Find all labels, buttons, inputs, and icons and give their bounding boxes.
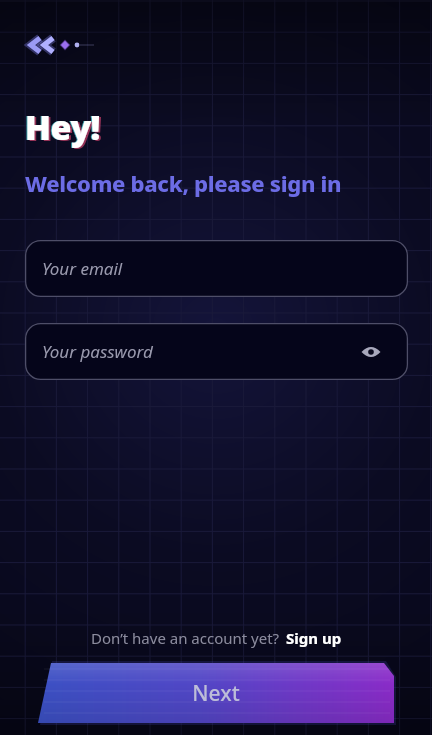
button[interactable]: Show password — [358, 339, 384, 365]
staticText: Welcome back, please sign in — [25, 168, 342, 198]
staticText: Hey! — [25, 104, 100, 150]
button[interactable]: Your email — [25, 240, 408, 297]
button[interactable]: Your password — [25, 323, 408, 380]
staticText: Your password — [42, 340, 153, 363]
staticText: Your email — [42, 257, 123, 280]
staticText: Don’t have an account yet? — [91, 628, 280, 648]
staticText: Next — [192, 679, 240, 708]
button[interactable]: Back — [22, 28, 84, 62]
button[interactable]: Next — [38, 663, 394, 723]
staticText: Sign up — [286, 628, 342, 648]
button[interactable]: Sign up — [286, 628, 342, 648]
staticText: Hey! — [27, 105, 102, 151]
staticText: Hey! — [24, 104, 99, 150]
